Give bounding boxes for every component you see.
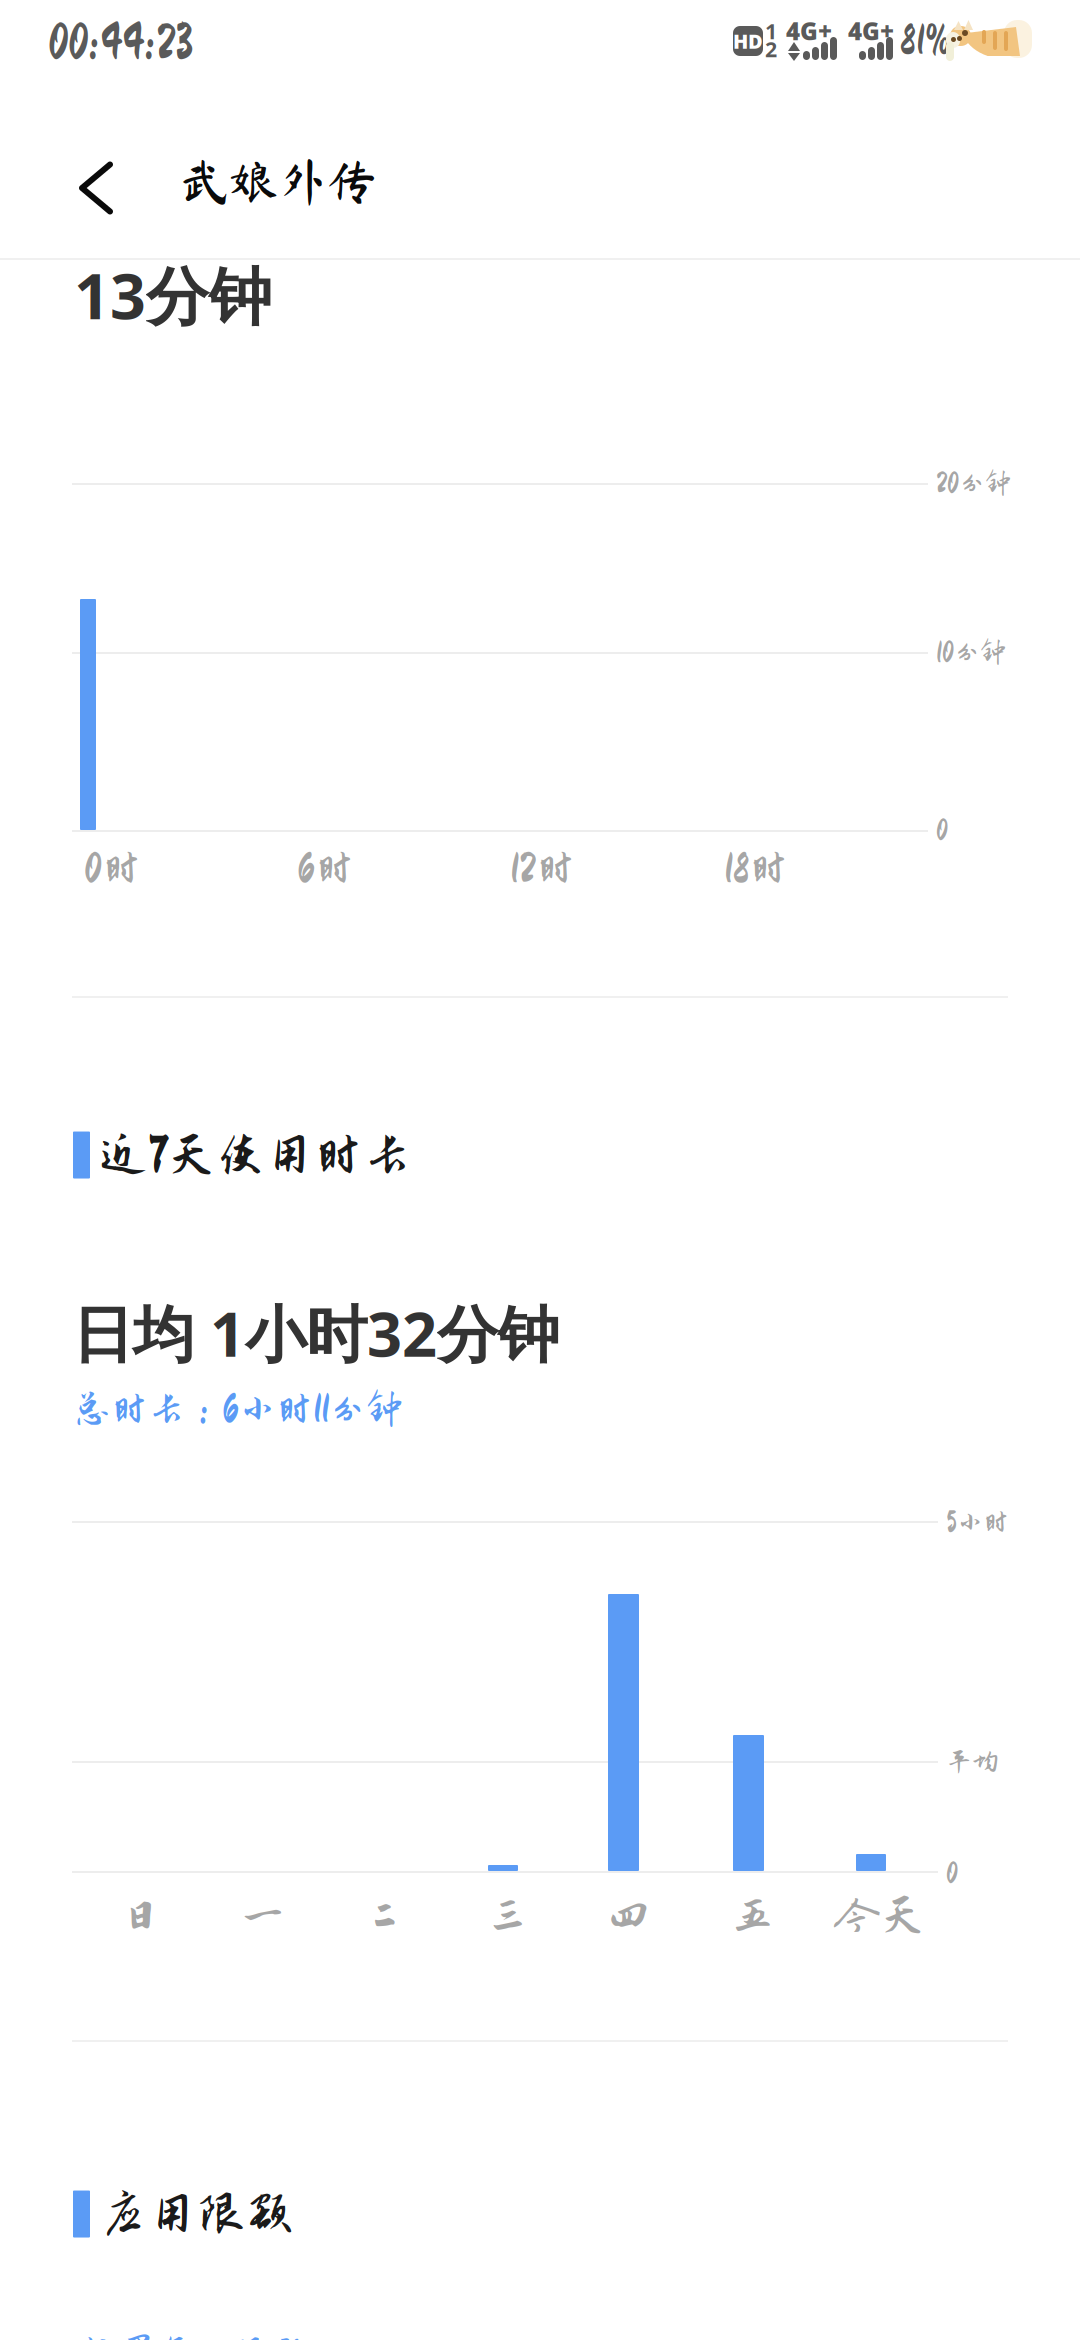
staticText: 四 <box>606 1891 652 1941</box>
staticText: 二 <box>362 1891 408 1941</box>
staticText: 00:44:23 <box>48 17 193 67</box>
staticText: 6时 <box>297 846 355 890</box>
staticText: 武娘外传 <box>180 156 376 206</box>
staticText: 日均 1小时32分钟 <box>72 1292 559 1374</box>
staticText: 2 <box>765 35 777 63</box>
button[interactable]: Back <box>0 0 1080 2340</box>
staticText: 0 <box>936 815 948 845</box>
staticText: 设置每日限额 <box>80 2333 308 2340</box>
staticText: 应用限额 <box>99 2187 295 2241</box>
staticText: 13分钟 <box>74 253 272 337</box>
staticText: 五 <box>730 1891 776 1941</box>
staticText: 4G+ <box>786 15 832 47</box>
staticText: 日 <box>118 1891 164 1941</box>
staticText: 20分钟 <box>936 468 1011 498</box>
staticText: 5小时 <box>946 1507 1009 1537</box>
staticText: 一 <box>240 1891 286 1941</box>
staticText: 三 <box>485 1891 531 1941</box>
staticText: 4G+ <box>848 15 894 47</box>
staticText: 今天 <box>834 1891 926 1941</box>
staticText: 1 <box>765 17 777 45</box>
staticText: 10分钟 <box>936 637 1006 667</box>
staticText: 0时 <box>84 846 142 890</box>
staticText: 近7天使用时长 <box>99 1128 412 1182</box>
staticText: 0 <box>946 1858 958 1888</box>
staticText: 18时 <box>724 846 789 890</box>
staticText: 81% <box>900 19 950 61</box>
staticText: 平均 <box>946 1747 998 1777</box>
staticText: HD <box>733 28 763 54</box>
staticText: 12时 <box>510 846 576 890</box>
staticText: 总时长：6小时11分钟 <box>74 1388 403 1430</box>
